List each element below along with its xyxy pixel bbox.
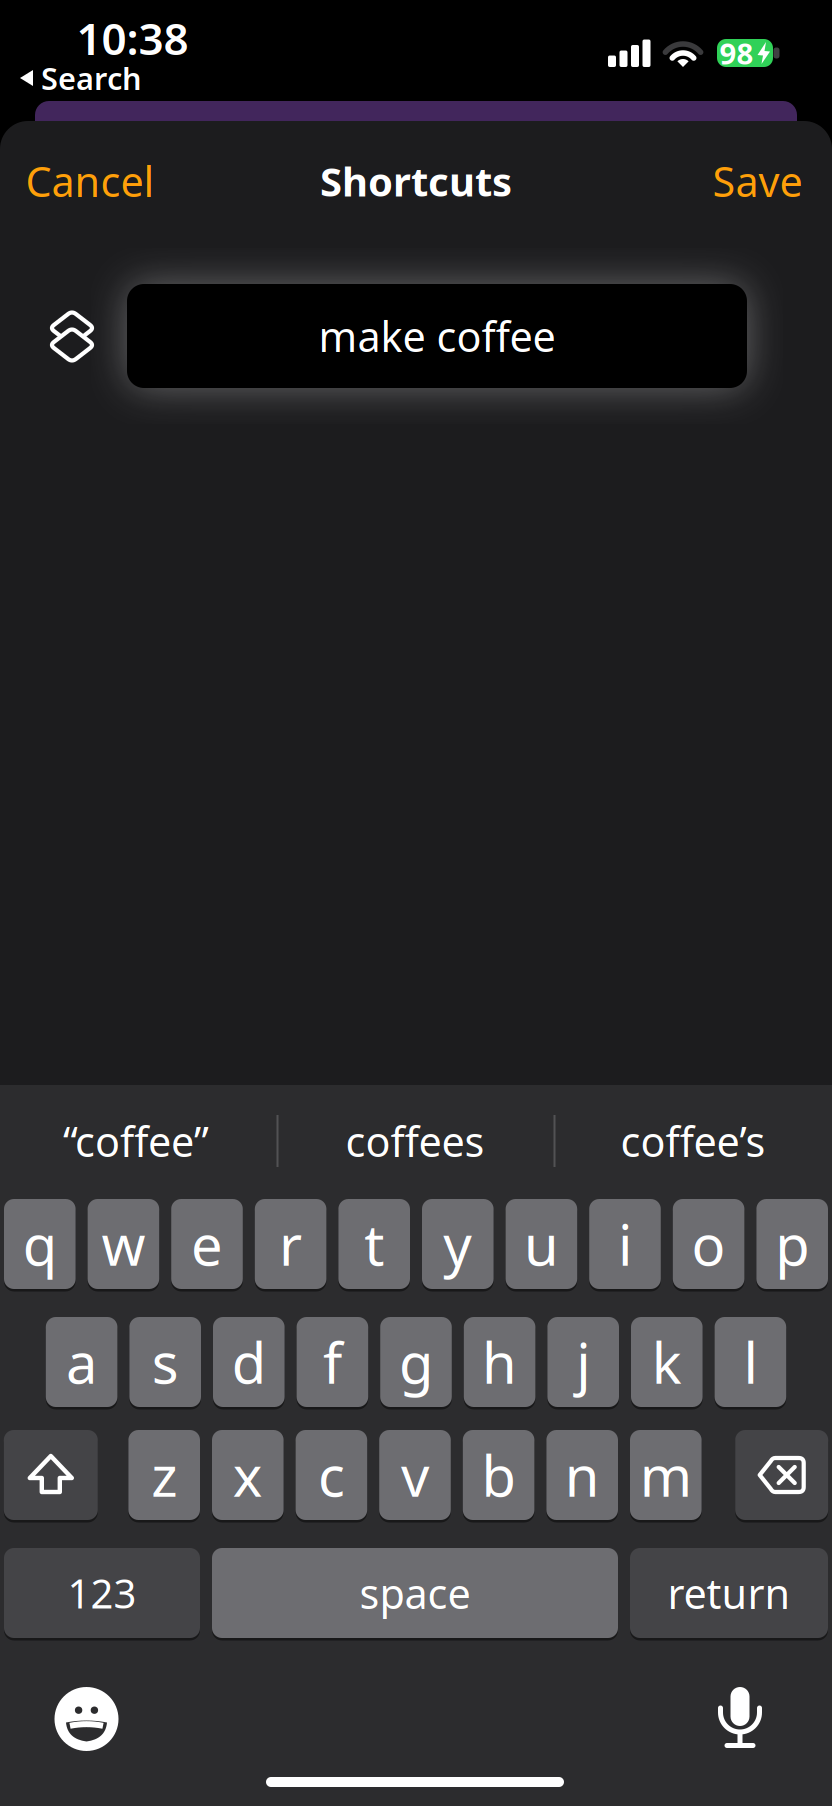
staticText: l <box>743 1325 757 1399</box>
staticText: y <box>443 1207 472 1281</box>
staticText: d <box>232 1325 266 1399</box>
button[interactable]: Shortcut phrase <box>97 254 777 418</box>
button[interactable]: y <box>422 1197 494 1291</box>
staticText: c <box>318 1438 345 1512</box>
button[interactable]: p <box>756 1197 828 1291</box>
button[interactable]: 123 <box>4 1546 200 1640</box>
button[interactable]: a <box>46 1315 117 1409</box>
button[interactable]: Dictate <box>710 1682 770 1752</box>
staticText: 10:38 <box>76 9 188 67</box>
button[interactable]: q <box>4 1197 76 1291</box>
staticText: coffees <box>345 1114 484 1168</box>
button[interactable]: j <box>547 1315 619 1409</box>
staticText: j <box>576 1325 590 1399</box>
staticText: coffee’s <box>620 1114 765 1168</box>
staticText: w <box>101 1207 145 1281</box>
button[interactable]: e <box>171 1197 243 1291</box>
button[interactable]: v <box>379 1428 451 1522</box>
button[interactable]: r <box>255 1197 326 1291</box>
staticText: i <box>618 1207 632 1281</box>
staticText: 123 <box>67 1566 136 1619</box>
staticText: space <box>359 1566 470 1620</box>
staticText: r <box>279 1207 302 1281</box>
button[interactable]: Save <box>712 154 802 208</box>
button[interactable]: z <box>128 1428 200 1522</box>
staticText: b <box>482 1438 516 1512</box>
staticText: z <box>151 1438 177 1512</box>
button[interactable]: l <box>715 1315 786 1409</box>
button[interactable]: t <box>338 1197 410 1291</box>
button[interactable]: g <box>380 1315 452 1409</box>
button[interactable]: coffees <box>290 1101 540 1181</box>
staticText: return <box>667 1566 790 1620</box>
button[interactable]: w <box>88 1197 159 1291</box>
staticText: e <box>191 1207 223 1281</box>
button[interactable]: f <box>297 1315 368 1409</box>
staticText: a <box>66 1325 97 1399</box>
staticText: v <box>401 1438 429 1512</box>
staticText: u <box>524 1207 559 1281</box>
staticText: s <box>152 1325 179 1399</box>
button[interactable]: Cancel <box>25 154 154 208</box>
staticText: p <box>775 1207 809 1281</box>
button[interactable]: Shift <box>4 1428 98 1522</box>
staticText: g <box>399 1325 433 1399</box>
staticText: o <box>692 1207 726 1281</box>
button[interactable]: c <box>296 1428 367 1522</box>
button[interactable]: Delete <box>735 1428 828 1522</box>
staticText: “coffee” <box>63 1114 209 1168</box>
staticText: Shortcuts <box>320 154 512 207</box>
button[interactable]: “coffee” <box>11 1101 261 1181</box>
staticText: Save <box>712 154 802 208</box>
staticText: t <box>364 1207 384 1281</box>
button[interactable]: Back to Search <box>18 58 142 98</box>
staticText: 98 <box>719 33 753 72</box>
button[interactable]: u <box>506 1197 577 1291</box>
staticText: f <box>323 1325 342 1399</box>
staticText: x <box>233 1438 263 1512</box>
button[interactable]: return <box>630 1546 828 1640</box>
button[interactable]: m <box>630 1428 702 1522</box>
button[interactable]: n <box>546 1428 618 1522</box>
staticText: Search <box>41 58 142 98</box>
staticText: m <box>640 1438 692 1512</box>
button[interactable]: k <box>631 1315 703 1409</box>
button[interactable]: s <box>129 1315 201 1409</box>
staticText: Cancel <box>25 154 154 208</box>
button[interactable]: o <box>673 1197 744 1291</box>
button[interactable]: h <box>464 1315 535 1409</box>
button[interactable]: Emoji <box>54 1687 118 1751</box>
button[interactable]: i <box>589 1197 661 1291</box>
button[interactable]: b <box>463 1428 534 1522</box>
button[interactable]: coffee’s <box>568 1101 818 1181</box>
button[interactable]: space <box>212 1546 618 1640</box>
button[interactable]: d <box>213 1315 285 1409</box>
staticText: h <box>482 1325 517 1399</box>
staticText: q <box>23 1207 57 1281</box>
staticText: n <box>565 1438 600 1512</box>
staticText: make coffee <box>318 309 555 363</box>
button[interactable]: x <box>212 1428 284 1522</box>
staticText: k <box>652 1325 682 1399</box>
